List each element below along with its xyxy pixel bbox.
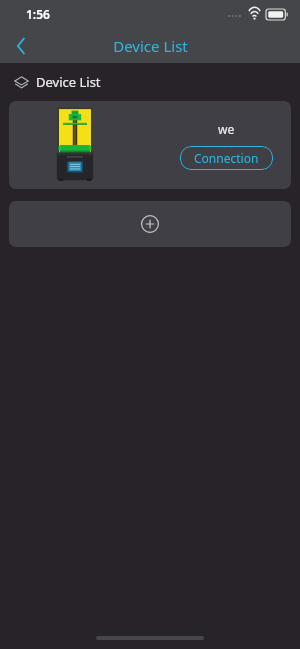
button[interactable]: we bbox=[9, 101, 291, 189]
staticText: Connection bbox=[194, 150, 259, 166]
staticText: Device List bbox=[113, 36, 188, 56]
staticText: Device List bbox=[36, 73, 101, 91]
staticText: 1:56 bbox=[26, 6, 50, 22]
button[interactable]: Add device bbox=[9, 201, 291, 247]
staticText: we bbox=[218, 121, 235, 137]
button[interactable]: Back bbox=[0, 28, 42, 63]
button[interactable]: Connection bbox=[180, 146, 273, 170]
